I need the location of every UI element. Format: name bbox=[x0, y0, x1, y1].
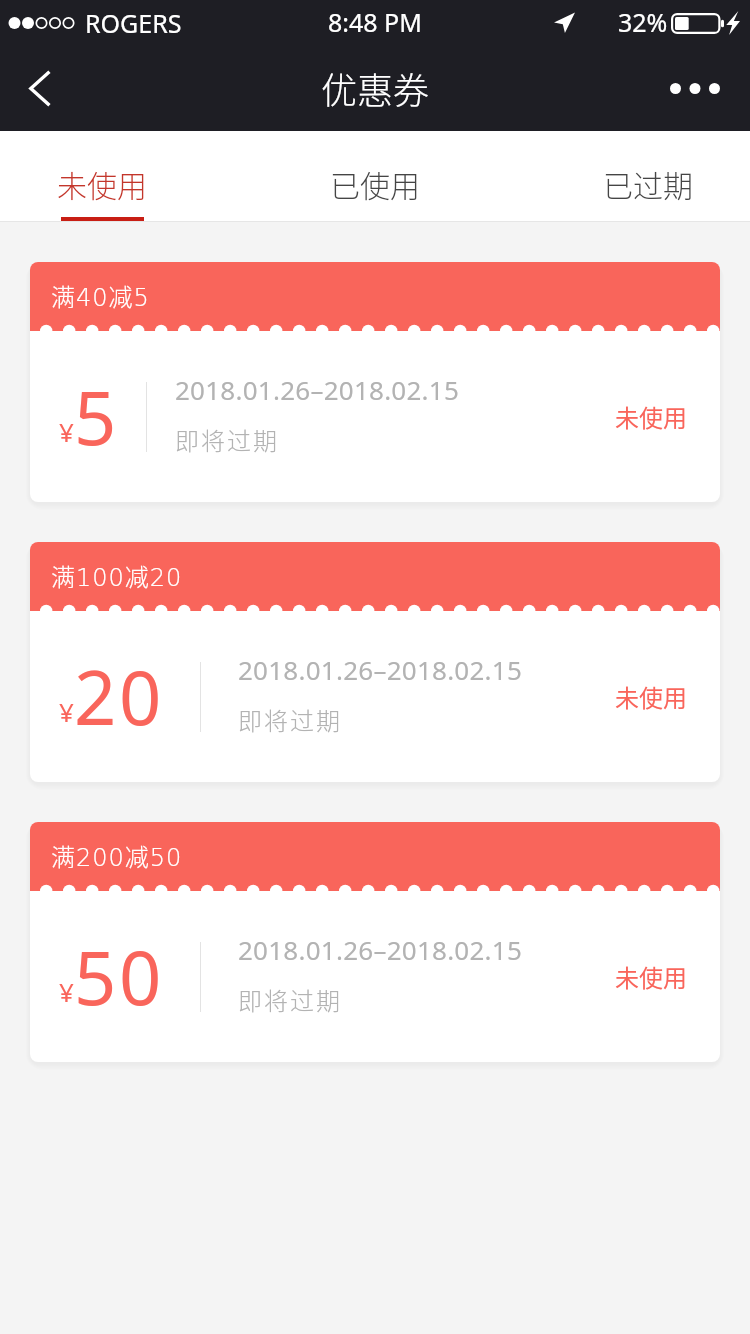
staticText: 已过期 bbox=[603, 162, 693, 205]
staticText: 8:48 PM bbox=[328, 5, 422, 39]
staticText: ¥ bbox=[59, 414, 74, 449]
button[interactable]: 已使用 bbox=[275, 131, 475, 222]
staticText: 优惠券 bbox=[321, 62, 430, 114]
staticText: 未使用 bbox=[57, 162, 147, 205]
staticText: ROGERS bbox=[85, 6, 182, 40]
staticText: 未使用 bbox=[615, 959, 687, 994]
staticText: 即将过期 bbox=[175, 422, 279, 457]
staticText: 2018.01.26–2018.02.15 bbox=[175, 372, 460, 407]
button[interactable]: 已过期 bbox=[548, 131, 748, 222]
staticText: 32% bbox=[618, 5, 668, 39]
button[interactable]: 未使用 bbox=[2, 131, 202, 222]
staticText: 50 bbox=[74, 926, 164, 1027]
staticText: 2018.01.26–2018.02.15 bbox=[238, 932, 523, 967]
staticText: 即将过期 bbox=[238, 702, 342, 737]
staticText: ¥ bbox=[59, 974, 74, 1009]
staticText: 未使用 bbox=[615, 679, 687, 714]
staticText: 未使用 bbox=[615, 399, 687, 434]
button[interactable]: More options bbox=[640, 45, 750, 131]
staticText: 即将过期 bbox=[238, 982, 342, 1017]
staticText: 满100减20 bbox=[51, 558, 183, 593]
staticText: 满40减5 bbox=[51, 278, 150, 313]
staticText: 已使用 bbox=[330, 162, 420, 205]
staticText: 20 bbox=[74, 646, 164, 747]
staticText: 2018.01.26–2018.02.15 bbox=[238, 652, 523, 687]
button[interactable]: 满40减5 bbox=[30, 262, 720, 502]
staticText: ¥ bbox=[59, 694, 74, 729]
button[interactable]: 满200减50 bbox=[30, 822, 720, 1062]
button[interactable]: Back bbox=[0, 45, 86, 131]
button[interactable]: 满100减20 bbox=[30, 542, 720, 782]
staticText: 5 bbox=[74, 366, 119, 467]
staticText: 满200减50 bbox=[51, 838, 183, 873]
